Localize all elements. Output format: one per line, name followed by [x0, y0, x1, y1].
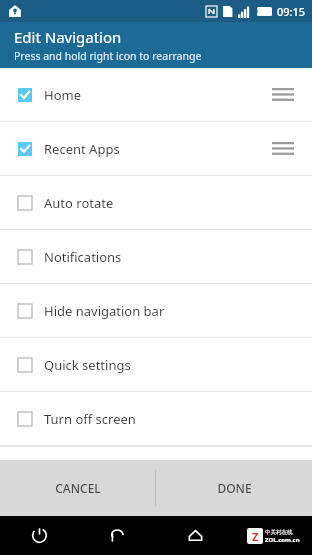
other: Reorder Recent Apps: [272, 142, 294, 156]
staticText: Notifications: [44, 248, 122, 266]
staticText: Turn off screen: [44, 410, 136, 428]
button[interactable]: Hide navigation bar: [0, 284, 312, 338]
staticText: 中关村在线: [265, 529, 293, 536]
button[interactable]: DONE: [156, 460, 312, 516]
staticText: Z: [252, 529, 259, 544]
button[interactable]: Home: [156, 516, 234, 555]
button[interactable]: Notifications: [0, 230, 312, 284]
staticText: DONE: [217, 480, 252, 496]
staticText: ZOL.com.cn: [265, 536, 300, 544]
staticText: Press and hold right icon to rearrange: [14, 49, 202, 63]
staticText: CANCEL: [55, 480, 101, 496]
button[interactable]: Auto rotate: [0, 176, 312, 230]
button[interactable]: Back: [78, 516, 156, 555]
button[interactable]: Recent Apps: [0, 122, 312, 176]
staticText: Auto rotate: [44, 194, 114, 212]
staticText: Recent Apps: [44, 140, 120, 158]
button[interactable]: Power: [0, 516, 78, 555]
button[interactable]: Turn off screen: [0, 392, 312, 446]
button[interactable]: Quick settings: [0, 338, 312, 392]
button[interactable]: CANCEL: [0, 460, 155, 516]
staticText: Home: [44, 86, 81, 104]
staticText: Hide navigation bar: [44, 302, 165, 320]
staticText: Quick settings: [44, 356, 131, 374]
other: Reorder Home: [272, 88, 294, 102]
staticText: Edit Navigation: [14, 27, 122, 47]
button[interactable]: Home: [0, 68, 312, 122]
staticText: 09:15: [277, 4, 306, 19]
